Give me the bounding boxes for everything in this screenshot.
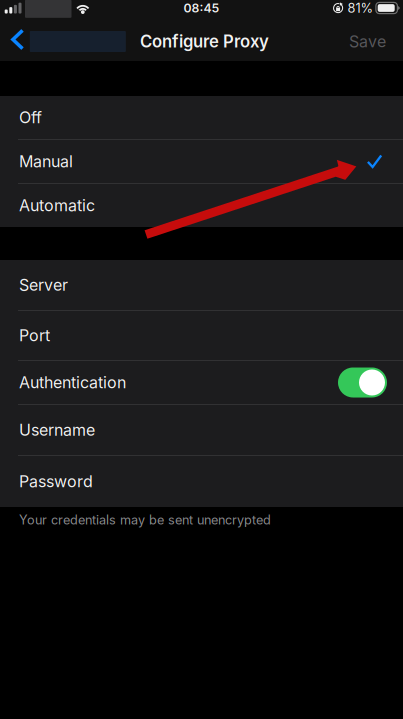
staticText: Save xyxy=(349,32,386,51)
staticText: Server xyxy=(19,275,68,295)
button[interactable]: Port xyxy=(0,311,403,360)
staticText: Username xyxy=(19,420,95,440)
staticText: Configure Proxy xyxy=(140,31,269,52)
button[interactable]: Authentication xyxy=(0,361,403,404)
button[interactable]: Automatic xyxy=(0,184,403,227)
button[interactable]: Off xyxy=(0,96,403,139)
button[interactable]: Save xyxy=(349,22,403,61)
button[interactable]: Username xyxy=(0,405,403,455)
staticText: 08:45 xyxy=(183,1,219,15)
staticText: Password xyxy=(19,472,93,491)
staticText: Manual xyxy=(19,152,73,171)
staticText: Off xyxy=(19,108,42,127)
staticText: Port xyxy=(19,326,50,345)
button[interactable]: Password xyxy=(0,456,403,507)
staticText: Automatic xyxy=(19,196,95,215)
staticText: Your credentials may be sent unencrypted xyxy=(19,512,271,528)
button[interactable]: Back xyxy=(0,22,126,61)
staticText: 81% xyxy=(347,0,373,16)
button[interactable]: Server xyxy=(0,260,403,310)
button[interactable]: Manual xyxy=(0,140,403,183)
staticText: Authentication xyxy=(19,373,126,392)
